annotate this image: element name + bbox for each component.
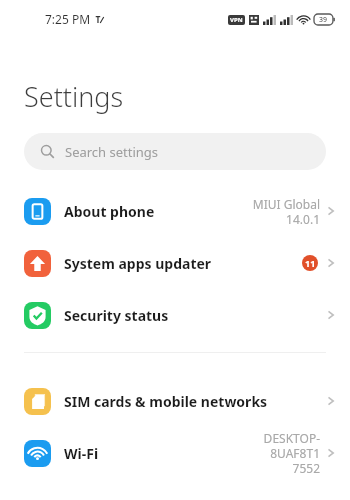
staticText: MIUI Global 14.0.1 <box>252 196 320 227</box>
staticText: Security status <box>64 306 169 325</box>
staticText: About phone <box>64 202 155 221</box>
button[interactable]: Security status <box>0 289 350 341</box>
staticText: Settings <box>24 78 124 115</box>
staticText: 11 <box>305 257 316 269</box>
button[interactable]: SIM cards & mobile networks <box>0 375 350 427</box>
staticText: System apps updater <box>64 254 212 273</box>
button[interactable]: System apps updater <box>0 237 350 289</box>
staticText: SIM cards & mobile networks <box>64 392 268 411</box>
staticText: 39 <box>319 15 328 25</box>
staticText: VPN <box>230 16 243 24</box>
staticText: 7:25 PM <box>45 11 91 27</box>
button[interactable]: Search settings <box>24 133 326 170</box>
button[interactable]: About phone <box>0 185 350 237</box>
staticText: DESKTOP- 8UAF8T1 7552 <box>263 430 320 476</box>
staticText: Wi-Fi <box>64 444 99 463</box>
staticText: Search settings <box>65 143 159 161</box>
button[interactable]: Wi-Fi <box>0 427 350 479</box>
